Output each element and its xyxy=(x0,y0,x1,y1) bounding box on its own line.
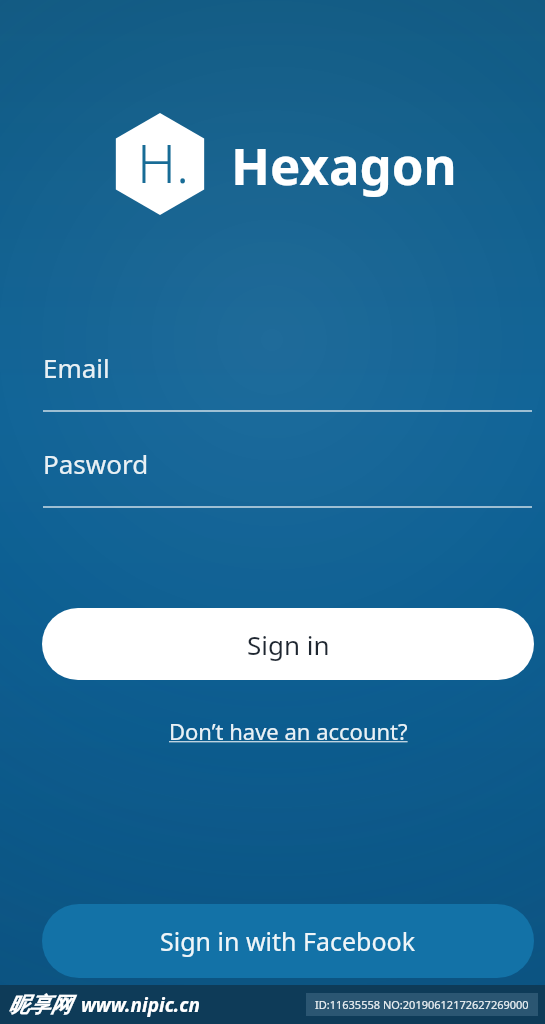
staticText: 昵享网 xyxy=(8,992,71,1018)
staticText: Sign in with Facebook xyxy=(160,924,416,958)
button[interactable]: Pasword xyxy=(43,446,532,508)
button[interactable]: Email xyxy=(43,350,532,412)
staticText: Pasword xyxy=(43,446,149,481)
staticText: www.nipic.cn xyxy=(71,992,200,1018)
staticText: ID:11635558 NO:20190612172627269000 xyxy=(315,997,529,1012)
staticText: Don’t have an account? xyxy=(169,716,408,746)
staticText: Sign in xyxy=(247,627,330,662)
button[interactable]: Sign in with Facebook xyxy=(42,904,534,978)
button[interactable]: Don’t have an account? xyxy=(31,714,545,748)
button[interactable]: Sign in xyxy=(42,608,534,680)
staticText: Hexagon xyxy=(231,130,457,199)
staticText: H. xyxy=(137,125,190,199)
staticText: Email xyxy=(43,350,110,385)
